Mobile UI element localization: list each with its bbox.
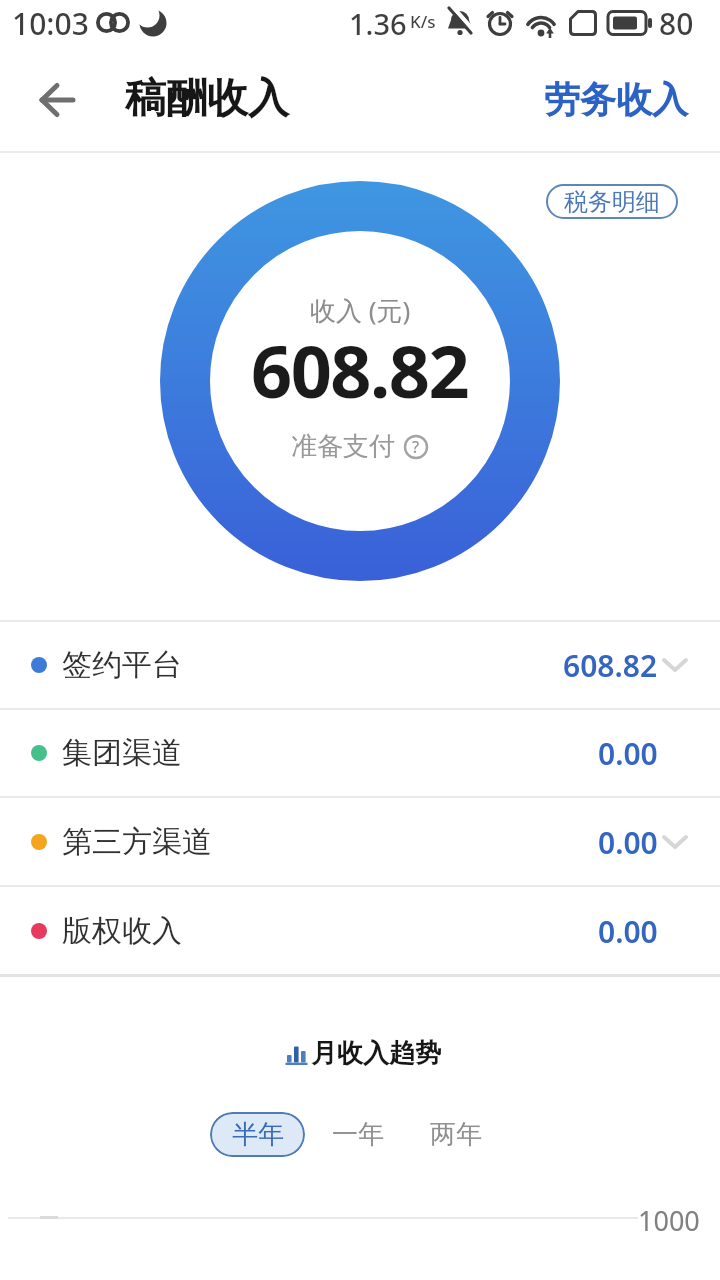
staticText: 收入 (元) — [310, 292, 411, 326]
staticText: 准备支付 — [291, 430, 395, 463]
staticText: 80 — [659, 3, 694, 44]
staticText: 608.82 — [563, 645, 658, 686]
staticText: K/s — [410, 10, 436, 33]
staticText: 月收入趋势 — [311, 1037, 441, 1070]
staticText: 版权收入 — [62, 912, 182, 950]
staticText: 两年 — [430, 1118, 482, 1151]
staticText: 劳务收入 — [544, 77, 688, 122]
staticText: 半年 — [232, 1118, 284, 1151]
staticText: 0.00 — [598, 911, 658, 952]
staticText: 签约平台 — [62, 646, 182, 684]
staticText: 第三方渠道 — [62, 823, 212, 861]
staticText: 税务明细 — [564, 187, 660, 217]
staticText: 1000 — [638, 1202, 700, 1239]
staticText: 集团渠道 — [62, 734, 182, 772]
staticText: 稿酬收入 — [125, 73, 289, 125]
staticText: 608.82 — [251, 321, 469, 415]
staticText: 0.00 — [598, 733, 658, 774]
staticText: 0.00 — [598, 822, 658, 863]
staticText: 10:03 — [12, 3, 89, 44]
staticText: 一年 — [332, 1118, 384, 1151]
staticText: 1.36 — [349, 4, 407, 43]
staticText: ? — [412, 436, 420, 458]
